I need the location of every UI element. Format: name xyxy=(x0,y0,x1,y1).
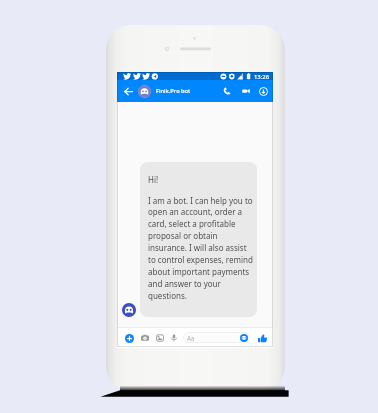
button[interactable]: Video call xyxy=(238,83,254,99)
button[interactable]: Hi! xyxy=(140,162,257,317)
button[interactable]: Gallery xyxy=(154,328,166,348)
button[interactable]: Add xyxy=(123,328,135,348)
button[interactable]: Conversation details xyxy=(255,83,271,99)
staticText: I am a bot. I can help you to open an ac… xyxy=(148,195,254,301)
button[interactable]: Voice message xyxy=(168,328,180,348)
button[interactable]: Back xyxy=(120,83,136,99)
button[interactable]: Aa xyxy=(183,332,250,343)
button[interactable]: Stickers xyxy=(238,328,250,348)
button[interactable]: Finik.Pro bot xyxy=(138,80,191,102)
button[interactable]: Like xyxy=(256,328,268,348)
staticText: Aa xyxy=(187,334,195,342)
staticText: Hi! xyxy=(148,174,159,185)
staticText: 13:26 xyxy=(254,73,270,81)
button[interactable]: Call xyxy=(219,83,235,99)
button[interactable]: Camera xyxy=(139,328,151,348)
staticText: Finik.Pro bot xyxy=(156,87,191,95)
